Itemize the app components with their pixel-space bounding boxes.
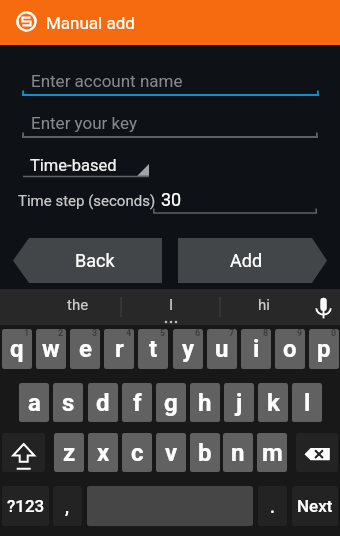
button[interactable]: f (122, 383, 152, 422)
button[interactable]: c (122, 433, 152, 472)
button[interactable]: g (156, 383, 186, 422)
staticText: hi (258, 296, 270, 314)
staticText: 7 (229, 329, 235, 339)
staticText: the (67, 296, 89, 314)
staticText: ?123 (7, 496, 45, 516)
staticText: 3 (92, 329, 98, 339)
button[interactable]: a (19, 383, 49, 422)
staticText: 4 (126, 329, 132, 339)
button[interactable]: d (88, 383, 118, 422)
staticText: . (270, 496, 276, 517)
button[interactable]: u (207, 329, 237, 369)
button[interactable]: Next (292, 486, 338, 526)
staticText: , (65, 496, 70, 517)
button[interactable]: i (241, 329, 271, 369)
staticText: Back (75, 250, 115, 271)
staticText: 5 (160, 329, 166, 339)
staticText: l (304, 389, 311, 417)
staticText: x (97, 439, 110, 467)
button[interactable]: . (258, 486, 287, 526)
staticText: Enter account name (31, 71, 183, 91)
staticText: 0 (331, 329, 337, 339)
staticText: u (215, 335, 229, 363)
button[interactable]: h (190, 383, 220, 422)
staticText: 2 (58, 329, 64, 339)
staticText: 9 (297, 329, 303, 339)
staticText: Manual add (46, 13, 135, 33)
staticText: 30 (161, 189, 182, 210)
button[interactable]: l (292, 383, 322, 422)
staticText: b (198, 439, 212, 467)
other: App logo (16, 11, 37, 32)
button[interactable]: v (156, 433, 186, 472)
staticText: f (133, 389, 142, 417)
staticText: a (28, 389, 41, 417)
staticText: j (236, 389, 243, 417)
staticText: 8 (263, 329, 269, 339)
button[interactable]: Time-based (23, 150, 149, 177)
button[interactable]: Enter your key (22, 109, 318, 139)
staticText: t (149, 335, 158, 363)
button[interactable]: Backspace (296, 433, 338, 472)
button[interactable]: I (141, 289, 201, 321)
staticText: Time step (seconds) (18, 192, 156, 210)
button[interactable]: 30 (153, 187, 317, 214)
button[interactable]: q (2, 329, 32, 369)
staticText: v (165, 439, 178, 467)
staticText: w (42, 335, 60, 363)
button[interactable]: k (258, 383, 288, 422)
button[interactable]: r (104, 329, 134, 369)
button[interactable]: j (224, 383, 254, 422)
staticText: 1 (24, 329, 30, 339)
staticText: r (115, 335, 124, 363)
staticText: c (131, 439, 144, 467)
staticText: e (79, 335, 92, 363)
staticText: p (317, 335, 331, 363)
staticText: Time-based (30, 156, 117, 175)
staticText: Add (230, 250, 263, 271)
button[interactable]: x (88, 433, 118, 472)
staticText: d (96, 389, 110, 417)
button[interactable]: ?123 (2, 486, 49, 526)
staticText: s (62, 389, 75, 417)
staticText: g (164, 389, 178, 417)
staticText: o (283, 335, 297, 363)
staticText: i (253, 335, 260, 363)
button[interactable]: m (257, 433, 287, 472)
button[interactable]: Back (13, 238, 162, 283)
button[interactable]: n (223, 433, 253, 472)
staticText: z (63, 439, 76, 467)
button[interactable]: o (275, 329, 305, 369)
button[interactable]: the (48, 289, 108, 321)
button[interactable]: Shift (2, 433, 45, 472)
button[interactable]: Voice input (313, 293, 335, 321)
button[interactable]: Enter account name (22, 67, 319, 97)
button[interactable]: e (70, 329, 100, 369)
button[interactable]: b (190, 433, 220, 472)
staticText: Next (297, 496, 333, 516)
button[interactable]: p (309, 329, 339, 369)
button[interactable]: , (53, 486, 82, 526)
button[interactable]: hi (234, 289, 294, 321)
button[interactable]: s (53, 383, 83, 422)
button[interactable]: z (54, 433, 84, 472)
staticText: y (182, 335, 195, 363)
staticText: m (262, 439, 283, 467)
button[interactable]: t (138, 329, 168, 369)
staticText: n (231, 439, 245, 467)
staticText: h (198, 389, 212, 417)
staticText: Enter your key (31, 113, 137, 133)
staticText: 6 (195, 329, 201, 339)
staticText: I (169, 296, 174, 314)
button[interactable]: w (36, 329, 66, 369)
staticText: q (10, 335, 24, 363)
button[interactable]: y (173, 329, 203, 369)
staticText: k (267, 389, 280, 417)
button[interactable]: Add (178, 238, 327, 283)
